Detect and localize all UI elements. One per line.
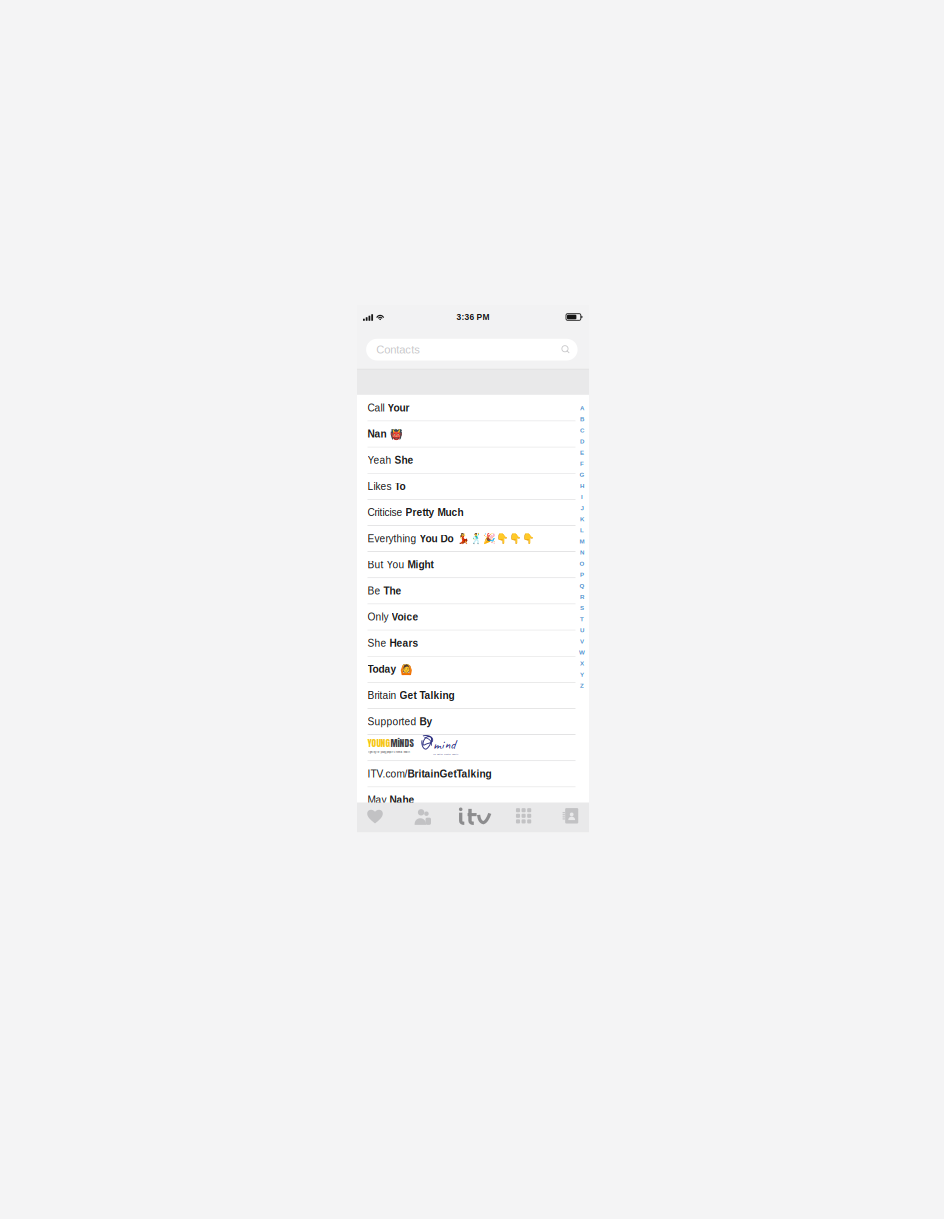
staticText: Contacts [376, 343, 420, 356]
staticText: Britain Get Talking [367, 690, 454, 701]
staticText: A [580, 405, 584, 412]
button[interactable]: YoungMinds and Mind charity logos [357, 735, 589, 761]
button[interactable]: ITV [452, 801, 496, 831]
staticText: for better mental health [433, 753, 458, 755]
staticText: V [580, 638, 584, 645]
button[interactable]: Contacts [366, 339, 578, 360]
staticText: S [580, 604, 584, 611]
staticText: ITV.com/BritainGetTalking [367, 768, 491, 779]
staticText: Criticise Pretty Much [367, 507, 463, 518]
staticText: C [580, 427, 584, 434]
button[interactable]: Contact card [547, 801, 591, 831]
staticText: G [579, 471, 584, 478]
staticText: R [580, 593, 584, 600]
staticText: B [580, 416, 584, 423]
button[interactable]: ITV.com/BritainGetTalking [357, 761, 589, 787]
staticText: P [580, 571, 584, 578]
staticText: MiNDS [390, 736, 413, 750]
staticText: T [580, 616, 584, 622]
staticText: O [579, 560, 584, 567]
button[interactable]: Call Your [357, 395, 589, 421]
button[interactable]: She Hears [357, 630, 589, 657]
staticText: Z [580, 682, 584, 689]
button[interactable]: Nan 👹 [357, 421, 589, 447]
staticText: J [580, 505, 583, 511]
staticText: But You Might [367, 559, 433, 570]
button[interactable]: Be The [357, 578, 589, 604]
staticText: Likes To [367, 481, 405, 492]
staticText: H [580, 482, 584, 489]
staticText: W [579, 649, 585, 656]
staticText: Be The [367, 585, 401, 596]
staticText: N [580, 549, 584, 556]
staticText: U [580, 627, 584, 634]
button[interactable]: Likes To [357, 474, 589, 500]
staticText: K [580, 516, 584, 523]
staticText: D [580, 438, 584, 445]
staticText: Only Voice [367, 612, 418, 623]
button[interactable]: Yeah She [357, 447, 589, 474]
staticText: Call Your [367, 402, 409, 413]
staticText: Yeah She [367, 455, 413, 466]
staticText: X [580, 660, 584, 667]
button[interactable]: Everything You Do 💃🕺🎉👇👇👇 [357, 526, 589, 552]
button[interactable]: Contacts list [399, 801, 443, 831]
staticText: May Nahe [367, 795, 414, 806]
staticText: I [581, 493, 583, 500]
staticText: F [580, 460, 584, 467]
button[interactable]: Criticise Pretty Much [357, 500, 589, 526]
staticText: Nan 👹 [367, 428, 402, 440]
staticText: mind [433, 735, 456, 753]
button[interactable]: Supported By [357, 709, 589, 735]
button[interactable]: Keypad [502, 801, 546, 831]
button[interactable]: Favourites [353, 801, 397, 831]
button[interactable]: May Nahe [357, 787, 589, 813]
staticText: Q [579, 582, 584, 589]
staticText: Everything You Do 💃🕺🎉👇👇👇 [367, 533, 534, 544]
staticText: E [580, 449, 584, 456]
staticText: YOUNG [367, 736, 390, 750]
staticText: fighting for young people's mental healt… [367, 751, 409, 754]
staticText: 3:36 PM [456, 312, 489, 322]
button[interactable]: But You Might [357, 552, 589, 578]
staticText: Y [580, 671, 584, 678]
staticText: L [580, 527, 584, 534]
staticText: Supported By [367, 716, 432, 727]
button[interactable]: Britain Get Talking [357, 683, 589, 709]
staticText: M [579, 538, 584, 545]
staticText: She Hears [367, 638, 418, 649]
staticText: Today 🙆 [367, 664, 412, 675]
button[interactable]: Only Voice [357, 604, 589, 630]
button[interactable]: Today 🙆 [357, 657, 589, 683]
